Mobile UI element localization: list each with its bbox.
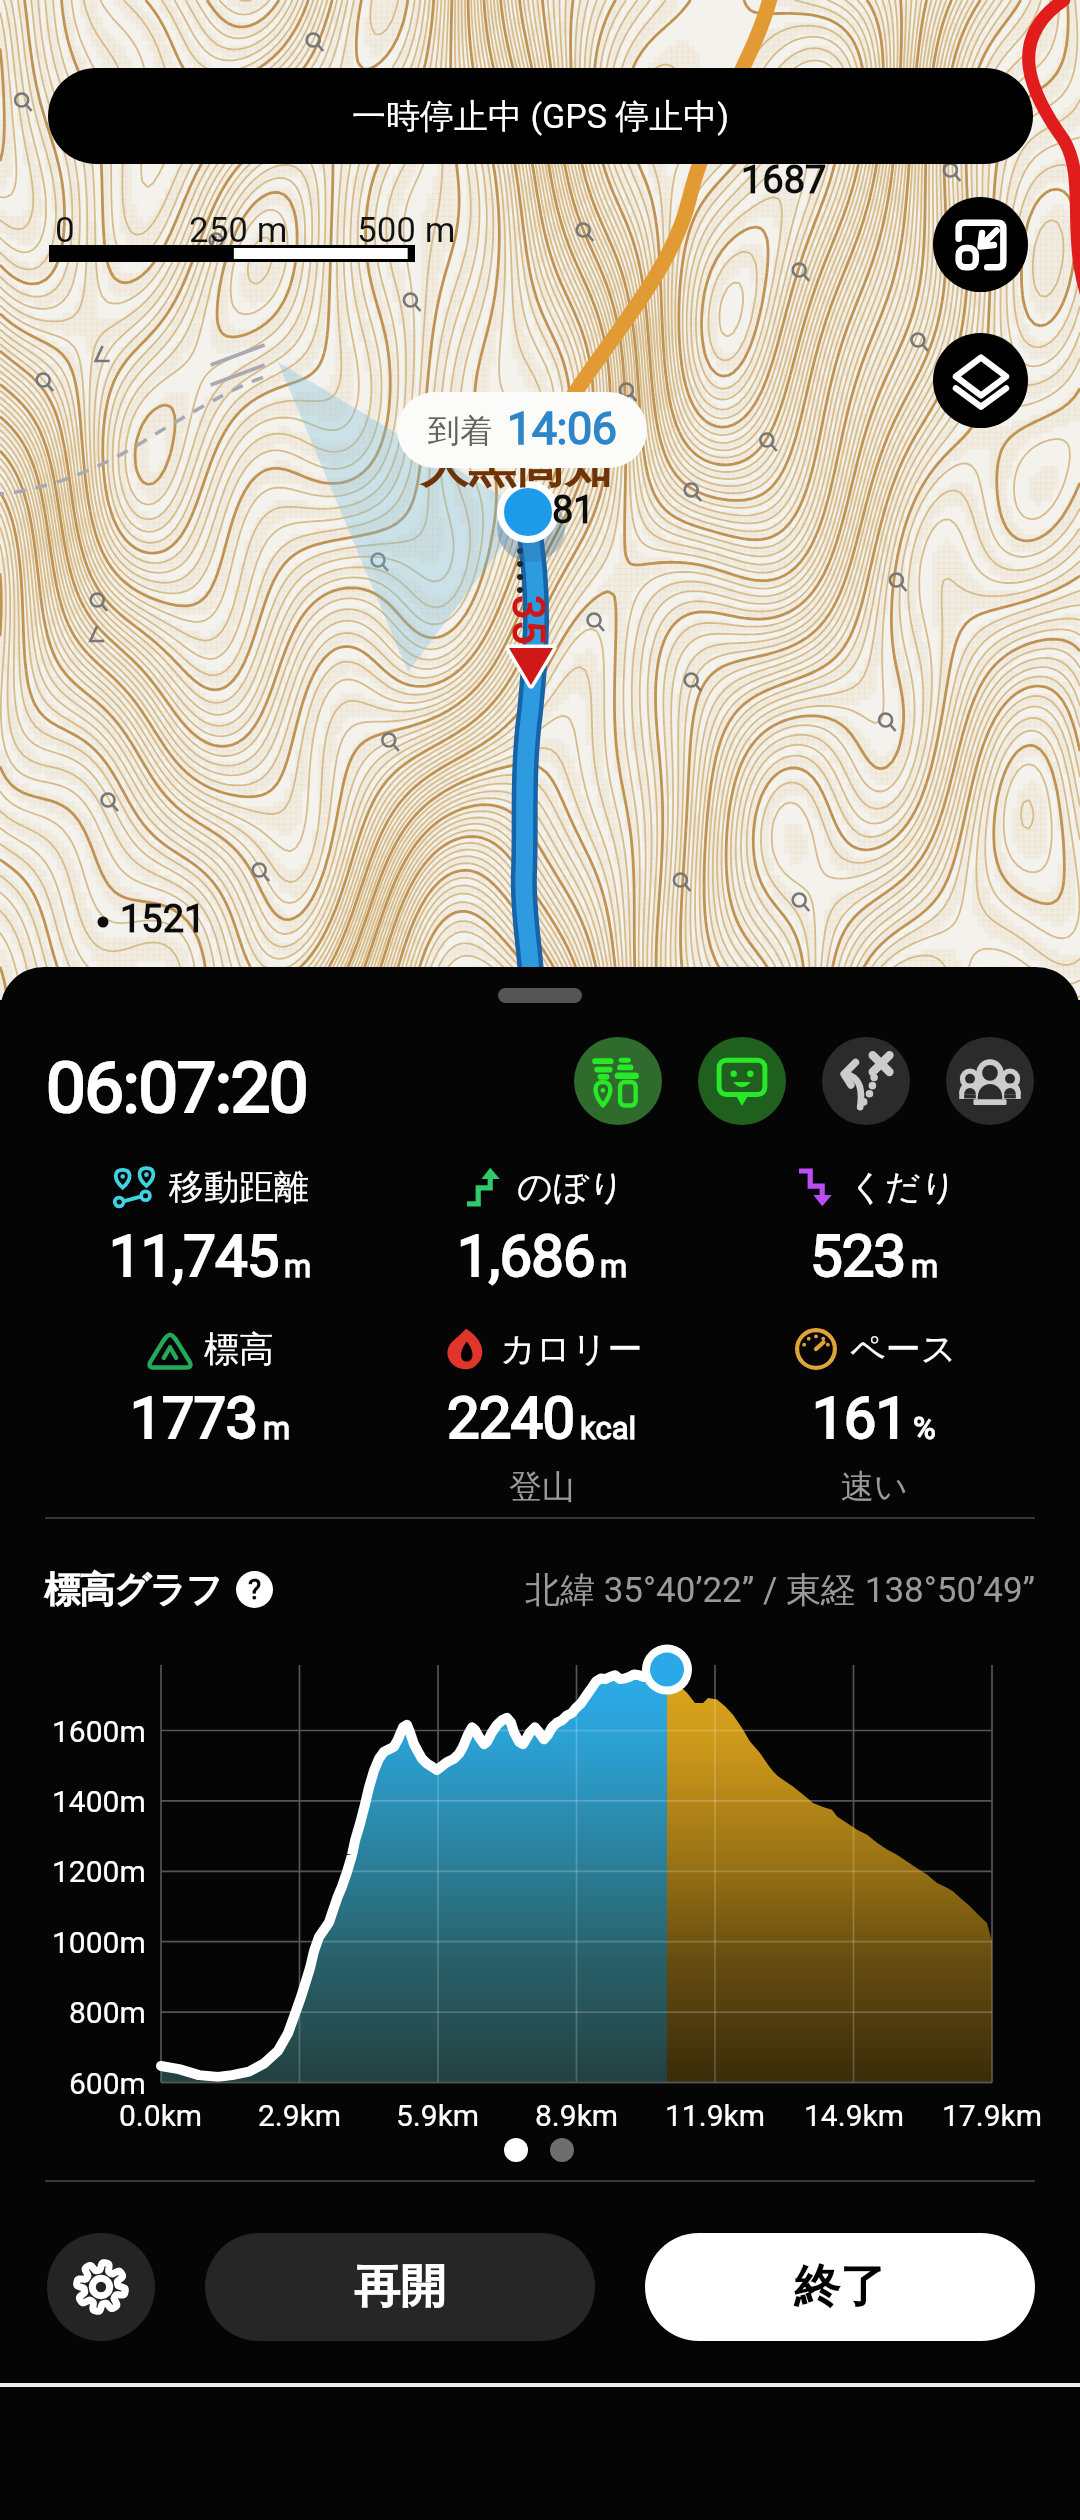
staticText: 到着 bbox=[428, 411, 492, 451]
staticText: 8.9km bbox=[535, 2098, 619, 2133]
staticText: % bbox=[913, 1410, 936, 1446]
staticText: 06:07:20 bbox=[46, 1046, 308, 1129]
staticText: くだり bbox=[849, 1165, 957, 1209]
button[interactable]: Route off bbox=[822, 1037, 910, 1125]
staticText: 81 bbox=[552, 488, 595, 533]
button[interactable]: Chat bbox=[698, 1037, 786, 1125]
staticText: 1687 bbox=[741, 158, 827, 203]
button[interactable]: Settings bbox=[47, 2233, 155, 2341]
staticText: 0.0km bbox=[119, 2098, 203, 2133]
staticText: 北緯 35°40’22” / 東経 138°50’49” bbox=[525, 1568, 1036, 1612]
staticText: 1,686 bbox=[457, 1222, 595, 1290]
staticText: 0 bbox=[55, 210, 75, 251]
button[interactable]: 終了 bbox=[645, 2233, 1035, 2341]
staticText: 2.9km bbox=[258, 2098, 342, 2133]
staticText: 17.9km bbox=[942, 2098, 1043, 2133]
staticText: カロリー bbox=[500, 1327, 643, 1371]
staticText: 1000m bbox=[52, 1925, 146, 1960]
button[interactable]: Map layers bbox=[933, 333, 1028, 428]
staticText: 250 m bbox=[189, 210, 288, 251]
button[interactable]: Water stations bbox=[574, 1037, 662, 1125]
staticText: 600m bbox=[69, 2066, 146, 2101]
button[interactable]: 到着 bbox=[397, 392, 647, 468]
staticText: 標高 bbox=[204, 1327, 274, 1371]
button[interactable]: 再開 bbox=[205, 2233, 595, 2341]
staticText: 523 bbox=[810, 1222, 906, 1290]
button[interactable]: Members bbox=[946, 1037, 1034, 1125]
staticText: 2240 bbox=[447, 1384, 575, 1452]
staticText: 1400m bbox=[52, 1784, 146, 1819]
staticText: 移動距離 bbox=[169, 1165, 309, 1209]
staticText: 再開 bbox=[354, 2258, 446, 2316]
staticText: 終了 bbox=[794, 2258, 886, 2316]
staticText: 11,745 bbox=[109, 1222, 279, 1290]
staticText: 11.9km bbox=[665, 2098, 766, 2133]
staticText: 800m bbox=[69, 1995, 146, 2030]
button[interactable]: Collapse map bbox=[933, 197, 1028, 292]
staticText: 大黒高知 bbox=[420, 436, 612, 496]
staticText: kcal bbox=[580, 1410, 637, 1446]
staticText: 登山 bbox=[509, 1466, 575, 1508]
staticText: 14.9km bbox=[804, 2098, 905, 2133]
button[interactable]: 一時停止中 (GPS 停止中) bbox=[48, 68, 1033, 164]
staticText: m bbox=[284, 1248, 312, 1284]
staticText: 161 bbox=[812, 1384, 908, 1452]
button[interactable]: Help bbox=[236, 1571, 273, 1608]
staticText: m bbox=[600, 1248, 628, 1284]
staticText: 14:06 bbox=[507, 402, 617, 455]
staticText: 5.9km bbox=[396, 2098, 480, 2133]
staticText: ? bbox=[248, 1573, 262, 1606]
staticText: 1773 bbox=[130, 1384, 258, 1452]
staticText: m bbox=[263, 1410, 291, 1446]
staticText: 35 bbox=[502, 595, 554, 645]
staticText: 標高グラフ bbox=[44, 1567, 222, 1612]
staticText: ペース bbox=[850, 1327, 957, 1371]
staticText: のぼり bbox=[517, 1165, 625, 1209]
staticText: 500 m bbox=[357, 210, 456, 251]
staticText: 一時停止中 (GPS 停止中) bbox=[352, 95, 730, 138]
staticText: 1600m bbox=[52, 1714, 146, 1749]
staticText: 速い bbox=[841, 1466, 908, 1508]
staticText: 1200m bbox=[52, 1854, 146, 1889]
staticText: 1521 bbox=[120, 897, 206, 942]
staticText: m bbox=[911, 1248, 939, 1284]
